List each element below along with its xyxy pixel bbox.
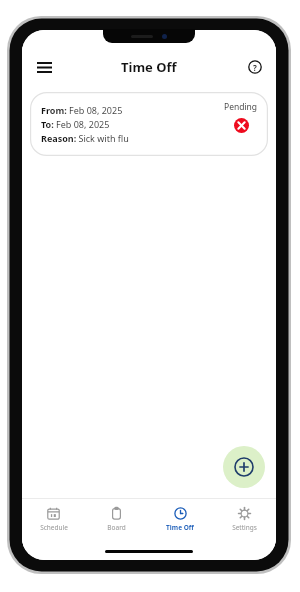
button[interactable]: From: Feb 08, 2025 xyxy=(30,92,268,156)
staticText: Settings xyxy=(232,523,257,532)
staticText: Reason: Sick with flu xyxy=(41,132,129,144)
button[interactable]: Time Off xyxy=(148,505,212,534)
button[interactable]: Help xyxy=(243,55,267,79)
staticText: Time Off xyxy=(121,58,177,76)
staticText: Pending xyxy=(224,101,258,113)
staticText: ? xyxy=(253,62,257,73)
button[interactable]: Board xyxy=(85,505,148,534)
button[interactable]: Schedule xyxy=(22,505,85,534)
staticText: Schedule xyxy=(40,523,68,532)
button[interactable]: Settings xyxy=(212,505,276,534)
button[interactable]: Menu xyxy=(31,54,57,80)
staticText: Board xyxy=(107,523,126,532)
staticText: Time Off xyxy=(166,523,194,532)
staticText: To: Feb 08, 2025 xyxy=(41,118,110,130)
button[interactable]: Add time off request xyxy=(223,446,265,488)
button[interactable]: Cancel request xyxy=(234,118,249,133)
staticText: From: Feb 08, 2025 xyxy=(41,104,123,116)
